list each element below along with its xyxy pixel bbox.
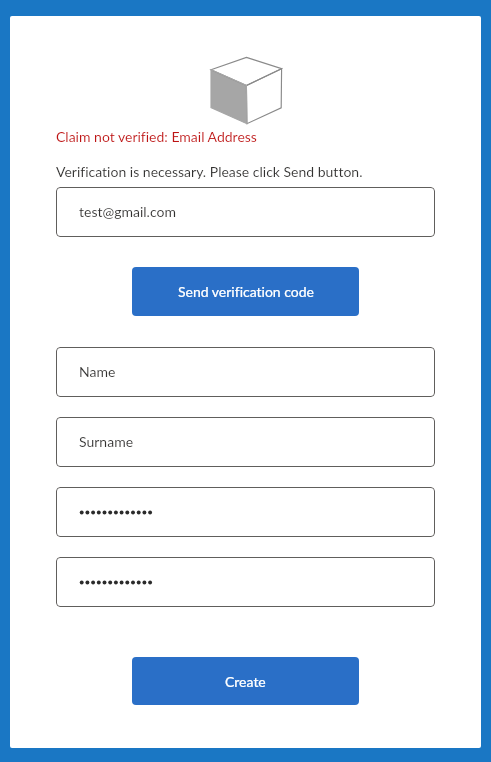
staticText: test@gmail.com <box>79 203 176 220</box>
button[interactable]: test@gmail.com <box>56 187 435 237</box>
staticText: Surname <box>79 433 134 450</box>
staticText: Claim not verified: Email Address <box>56 128 257 145</box>
staticText: Verification is necessary. Please click … <box>56 163 363 180</box>
button[interactable]: Send verification code <box>132 267 359 316</box>
button[interactable]: Surname <box>56 417 435 467</box>
button[interactable]: Password <box>56 487 435 537</box>
button[interactable]: Name <box>56 347 435 397</box>
button[interactable]: Create <box>132 657 359 705</box>
staticText: Create <box>225 673 266 690</box>
staticText: Name <box>79 363 116 380</box>
staticText: Send verification code <box>178 283 314 300</box>
button[interactable]: Password <box>56 557 435 607</box>
